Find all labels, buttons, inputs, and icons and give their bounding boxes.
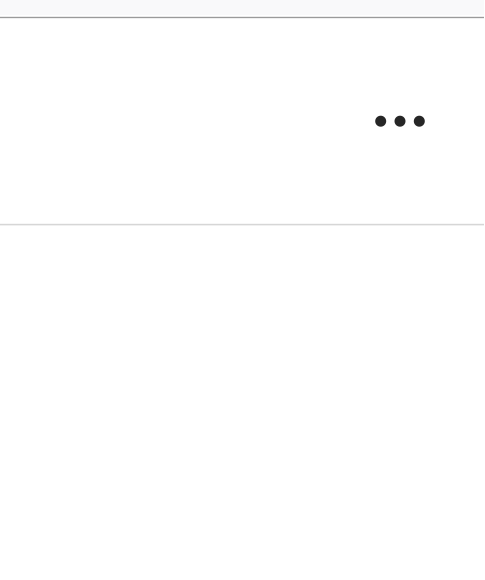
button[interactable]: More xyxy=(371,99,429,143)
